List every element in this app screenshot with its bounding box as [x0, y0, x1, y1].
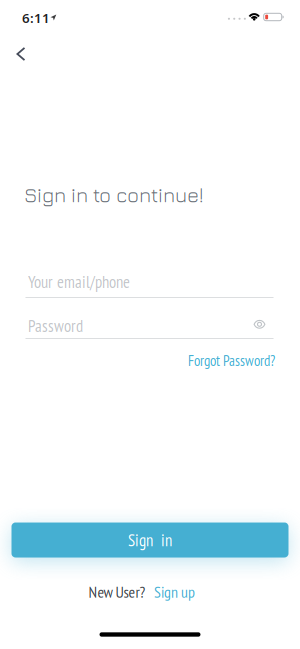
button[interactable]: Sign up	[154, 581, 195, 602]
staticText: New User?	[88, 581, 145, 602]
button[interactable]: Back	[8, 39, 33, 69]
staticText: Sign up	[154, 581, 195, 602]
staticText: Sign in to continue!	[24, 183, 203, 207]
button[interactable]: Sign in	[11, 522, 288, 557]
staticText: Sign in	[128, 529, 172, 551]
button[interactable]: Forgot Password?	[188, 351, 275, 370]
staticText: Password	[28, 315, 83, 337]
staticText: 6:11	[22, 9, 50, 27]
staticText: Your email/phone	[28, 271, 130, 293]
staticText: Forgot Password?	[188, 351, 275, 370]
button[interactable]: Show password	[249, 316, 269, 333]
